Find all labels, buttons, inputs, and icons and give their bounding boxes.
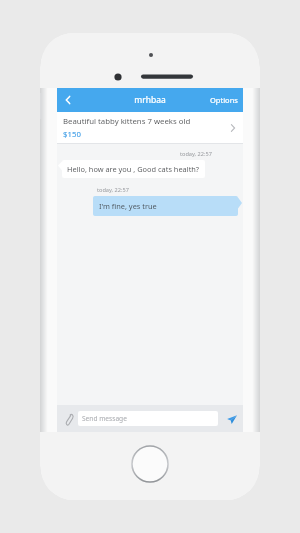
staticText: Hello, how are you , Good cats health? bbox=[67, 164, 200, 174]
button[interactable]: Options bbox=[210, 88, 238, 112]
staticText: Send message bbox=[82, 414, 127, 423]
button[interactable]: I'm fine, yes true bbox=[93, 196, 242, 216]
staticText: Options bbox=[210, 95, 238, 105]
button[interactable]: Hello, how are you , Good cats health? bbox=[58, 160, 225, 178]
staticText: mrhbaa bbox=[134, 94, 166, 106]
button[interactable]: Beautiful tabby kittens 7 weeks old bbox=[57, 112, 243, 143]
button[interactable]: Home bbox=[131, 445, 169, 483]
button[interactable]: Attach file bbox=[61, 409, 75, 429]
button[interactable]: Back bbox=[57, 88, 79, 112]
button[interactable]: Send bbox=[223, 409, 239, 429]
staticText: today, 22:57 bbox=[97, 186, 129, 194]
staticText: $150 bbox=[63, 129, 81, 140]
staticText: Beautiful tabby kittens 7 weeks old bbox=[63, 116, 191, 127]
staticText: today, 22:57 bbox=[180, 150, 212, 158]
staticText: I'm fine, yes true bbox=[99, 201, 157, 211]
button[interactable]: Send message bbox=[78, 411, 218, 426]
